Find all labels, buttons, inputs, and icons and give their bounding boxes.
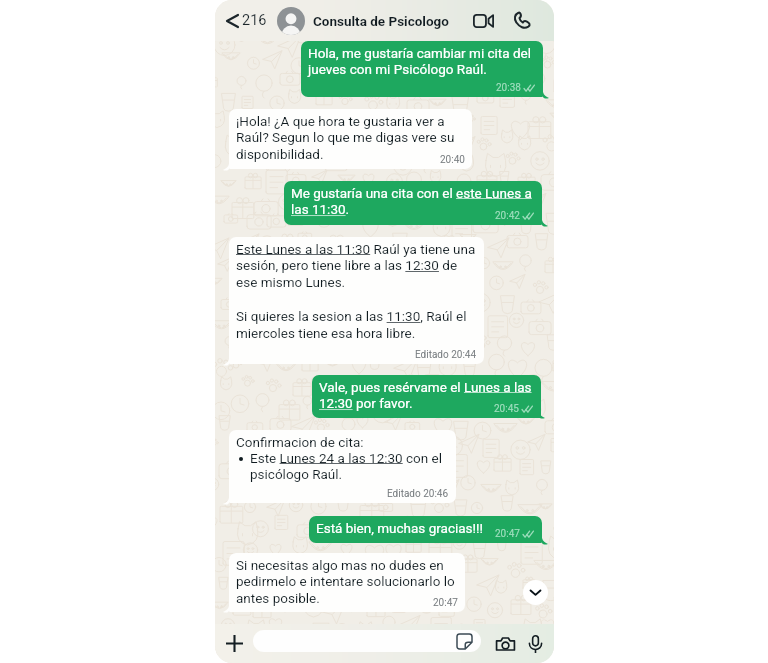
staticText: Editado 20:44 xyxy=(415,349,477,361)
staticText: ¡Hola! ¿A que hora te gustaria ver a Raú… xyxy=(236,113,465,163)
button[interactable]: Confirmacion de cita: xyxy=(229,430,456,503)
staticText: 20:47 xyxy=(495,528,520,540)
staticText: 20:47 xyxy=(433,597,458,609)
staticText: Este Lunes 24 a las 12:30 con el psicólo… xyxy=(250,450,449,483)
staticText: Consulta de Psicologo xyxy=(313,13,449,29)
other: Back xyxy=(227,15,238,27)
button[interactable]: Scroll to bottom xyxy=(523,580,548,605)
button[interactable]: Está bien, muchas gracias!!! xyxy=(309,516,542,543)
staticText: 20:38 xyxy=(496,82,521,94)
staticText: 20:40 xyxy=(440,154,465,166)
staticText: Está bien, muchas gracias!!! xyxy=(316,520,535,536)
button[interactable] xyxy=(253,630,481,652)
staticText: Hola, me gustaría cambiar mi cita del ju… xyxy=(308,45,536,78)
staticText: 20:45 xyxy=(494,403,519,415)
button[interactable]: Camera xyxy=(491,624,520,663)
button[interactable]: Consulta de Psicologo xyxy=(277,0,449,41)
button[interactable]: Hola, me gustaría cambiar mi cita del ju… xyxy=(301,41,543,97)
staticText: Me gustaría una cita con el este Lunes a… xyxy=(291,185,535,218)
button[interactable]: Voice call xyxy=(506,0,537,41)
staticText: Vale, pues resérvame el Lunes a las 12:3… xyxy=(319,379,534,412)
button[interactable]: Video call xyxy=(467,0,500,41)
staticText: Si necesitas algo mas no dudes en pedirm… xyxy=(236,557,458,607)
staticText: 216 xyxy=(242,12,267,29)
button[interactable]: Attach xyxy=(220,624,248,663)
staticText: 20:42 xyxy=(495,210,520,222)
staticText: Este Lunes a las 11:30 Raúl ya tiene una… xyxy=(236,241,477,342)
button[interactable]: Me gustaría una cita con el este Lunes a… xyxy=(284,181,542,225)
button[interactable]: Este Lunes a las 11:30 Raúl ya tiene una… xyxy=(229,237,484,364)
button[interactable]: ¡Hola! ¿A que hora te gustaria ver a Raú… xyxy=(229,109,472,169)
button[interactable]: Back xyxy=(223,0,271,41)
staticText: Editado 20:46 xyxy=(387,488,449,500)
button[interactable]: Vale, pues resérvame el Lunes a las 12:3… xyxy=(312,375,541,418)
button[interactable]: Voice message xyxy=(522,624,549,663)
button[interactable]: Si necesitas algo mas no dudes en pedirm… xyxy=(229,553,465,612)
staticText: Confirmacion de cita: xyxy=(236,434,364,450)
